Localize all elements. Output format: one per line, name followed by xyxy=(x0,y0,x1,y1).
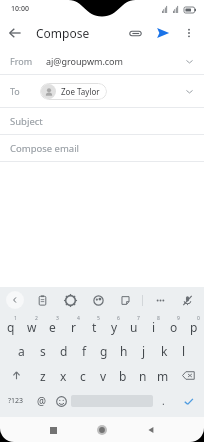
button[interactable]: h xyxy=(114,338,134,363)
button[interactable]: Voice input off xyxy=(177,290,197,310)
button[interactable]: Sticker xyxy=(115,290,135,310)
staticText: o xyxy=(170,319,178,335)
staticText: b xyxy=(119,368,127,384)
button[interactable]: x xyxy=(53,363,73,388)
button[interactable]: 4 xyxy=(63,313,84,338)
button[interactable]: Settings xyxy=(60,290,80,310)
button[interactable]: Send xyxy=(149,19,177,47)
staticText: e xyxy=(49,319,56,335)
button[interactable]: d xyxy=(53,338,74,363)
staticText: p xyxy=(190,319,198,335)
staticText: m xyxy=(157,368,169,384)
button[interactable]: a xyxy=(11,338,32,363)
staticText: To xyxy=(10,85,20,97)
staticText: k xyxy=(161,343,168,359)
button[interactable]: 1 xyxy=(0,313,21,338)
button[interactable]: z xyxy=(32,363,53,388)
staticText: . xyxy=(162,394,165,408)
staticText: Compose email xyxy=(10,142,80,155)
button[interactable]: k xyxy=(154,338,174,363)
button[interactable]: g xyxy=(94,338,114,363)
staticText: 4 xyxy=(77,315,80,322)
button[interactable]: Backspace xyxy=(173,363,204,388)
staticText: t xyxy=(92,319,97,335)
staticText: 1 xyxy=(14,315,17,322)
button[interactable]: s xyxy=(32,338,53,363)
staticText: j xyxy=(142,343,146,359)
staticText: v xyxy=(100,368,107,384)
staticText: 6 xyxy=(117,315,120,322)
button[interactable]: 7 xyxy=(124,313,144,338)
staticText: h xyxy=(120,343,128,359)
staticText: 5 xyxy=(97,315,100,322)
button[interactable]: More options xyxy=(177,21,201,45)
button[interactable]: n xyxy=(133,363,153,388)
staticText: d xyxy=(60,343,68,359)
staticText: a xyxy=(18,343,25,359)
button[interactable]: 5 xyxy=(84,313,104,338)
button[interactable]: 8 xyxy=(144,313,164,338)
button[interactable]: Enter xyxy=(173,388,204,414)
button[interactable]: Compose email xyxy=(0,135,204,161)
staticText: 9 xyxy=(177,315,180,322)
staticText: Subject xyxy=(10,115,43,128)
staticText: aj@groupwm.com xyxy=(46,55,123,67)
staticText: Zoe Taylor xyxy=(61,86,100,97)
staticText: 0 xyxy=(197,315,200,322)
button[interactable]: Back xyxy=(0,18,30,48)
staticText: l xyxy=(182,343,186,359)
button[interactable]: @ xyxy=(31,388,51,414)
staticText: f xyxy=(82,343,87,359)
button[interactable]: 0 xyxy=(184,313,204,338)
button[interactable]: c xyxy=(73,363,93,388)
button[interactable]: 9 xyxy=(164,313,184,338)
staticText: y xyxy=(111,319,118,335)
button[interactable]: j xyxy=(134,338,154,363)
staticText: x xyxy=(60,368,67,384)
staticText: Compose xyxy=(36,25,90,41)
button[interactable]: b xyxy=(113,363,133,388)
button[interactable]: f xyxy=(74,338,94,363)
staticText: 8 xyxy=(157,315,160,322)
button[interactable]: Clipboard xyxy=(32,290,52,310)
button[interactable]: Expand toolbar xyxy=(6,291,24,309)
button[interactable]: Subject xyxy=(0,108,204,134)
staticText: g xyxy=(100,343,108,359)
staticText: 3 xyxy=(56,315,59,322)
button[interactable]: Themes xyxy=(88,290,108,310)
button[interactable]: Back xyxy=(140,419,162,441)
button[interactable]: Recents xyxy=(42,419,64,441)
staticText: From xyxy=(10,55,33,67)
button[interactable]: Emoji xyxy=(51,388,71,414)
button[interactable]: Attach file xyxy=(121,19,149,47)
staticText: i xyxy=(152,319,156,335)
button[interactable]: l xyxy=(174,338,194,363)
button[interactable]: ?123 xyxy=(0,388,31,414)
button[interactable]: Shift xyxy=(0,363,32,388)
button[interactable]: . xyxy=(153,388,173,414)
staticText: u xyxy=(130,319,138,335)
staticText: z xyxy=(40,368,46,384)
button[interactable]: m xyxy=(153,363,173,388)
staticText: c xyxy=(80,368,86,384)
staticText: 2 xyxy=(35,315,38,322)
button[interactable]: 3 xyxy=(42,313,63,338)
button[interactable]: Home xyxy=(91,419,113,441)
button[interactable]: To xyxy=(0,75,204,107)
staticText: @ xyxy=(37,394,46,408)
staticText: 7 xyxy=(137,315,140,322)
button[interactable]: Zoe Taylor xyxy=(40,83,107,100)
button[interactable]: v xyxy=(93,363,113,388)
button[interactable]: From xyxy=(0,48,204,74)
staticText: 10:00 xyxy=(11,4,29,14)
button[interactable]: 6 xyxy=(104,313,124,338)
staticText: ?123 xyxy=(8,396,24,406)
button[interactable]: More xyxy=(150,290,170,310)
staticText: r xyxy=(71,319,76,335)
staticText: s xyxy=(40,343,46,359)
staticText: w xyxy=(27,319,37,335)
staticText: q xyxy=(7,319,15,335)
staticText: n xyxy=(139,368,147,384)
button[interactable]: 2 xyxy=(21,313,42,338)
